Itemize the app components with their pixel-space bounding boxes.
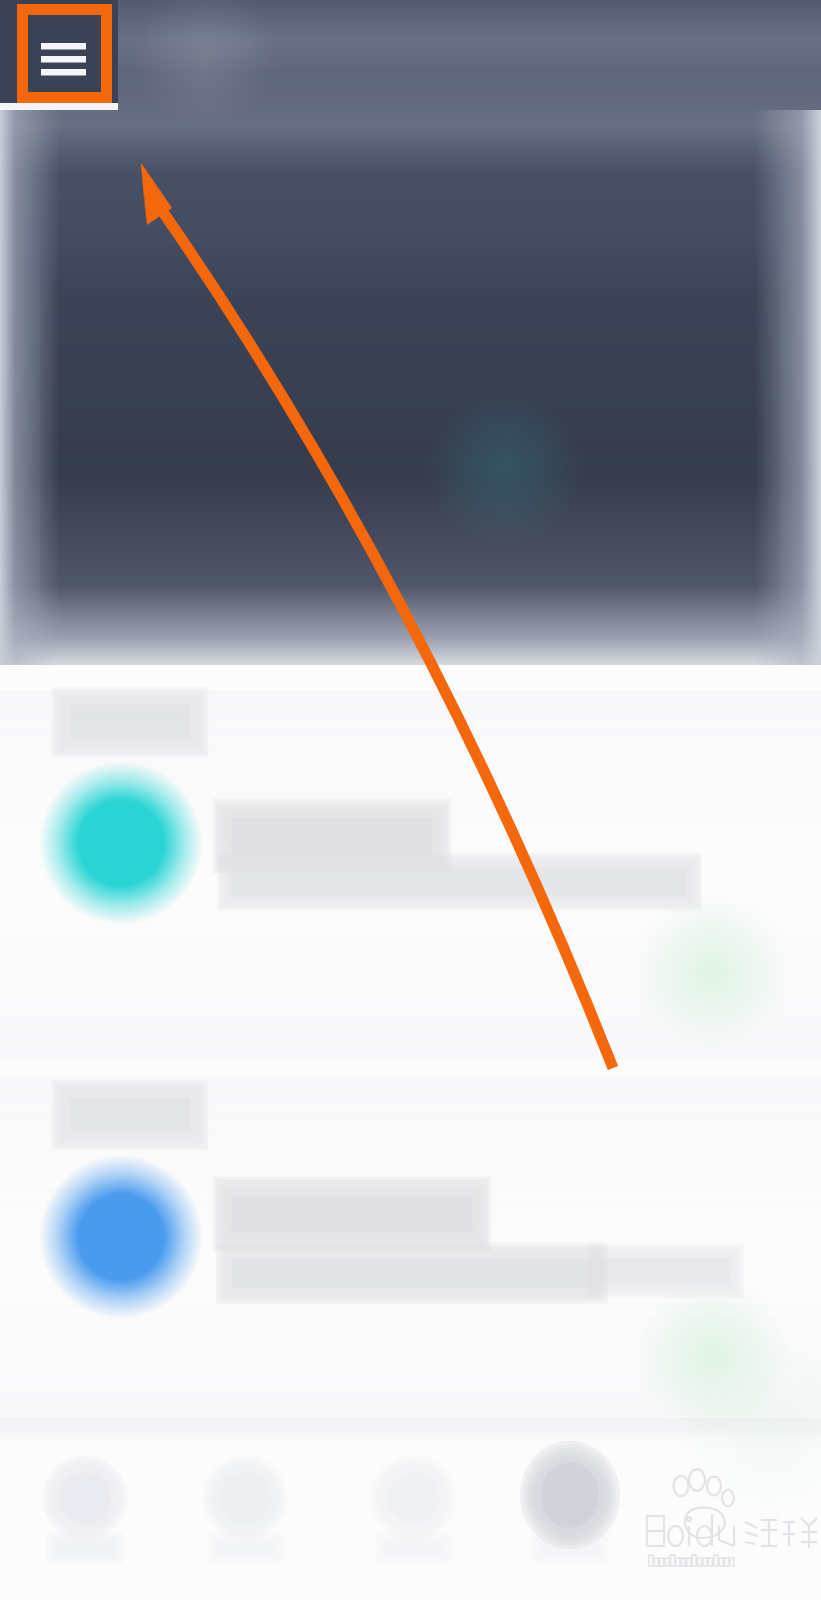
button[interactable]: Open navigation menu (0, 0, 118, 110)
